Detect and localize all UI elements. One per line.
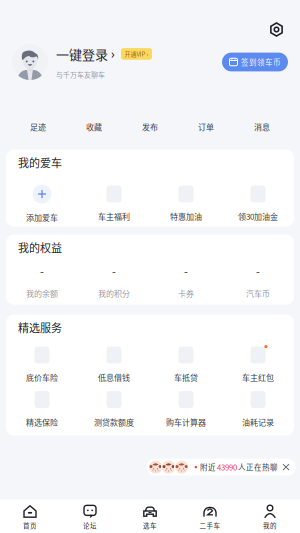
staticText: 消息	[254, 121, 270, 133]
staticText: 车主红包	[242, 371, 274, 383]
button[interactable]: 论坛	[60, 505, 120, 530]
staticText: -	[256, 263, 260, 279]
staticText: 二手车	[199, 521, 220, 530]
staticText: 论坛	[83, 521, 97, 530]
button[interactable]: 我的	[240, 505, 300, 530]
staticText: 测贷款额度	[94, 416, 134, 428]
button[interactable]: 车抵贷	[150, 346, 222, 383]
staticText: -	[184, 263, 188, 279]
staticText: 添加爱车	[26, 211, 58, 223]
button[interactable]: 二手车	[180, 505, 240, 530]
staticText: -	[112, 263, 116, 279]
button[interactable]: 特惠加油	[150, 185, 222, 222]
staticText: 车主福利	[98, 210, 130, 222]
staticText: 首页	[23, 521, 37, 530]
staticText: 油耗记录	[242, 416, 274, 428]
button[interactable]: 油耗记录	[222, 391, 294, 428]
staticText: -	[40, 263, 44, 279]
staticText: 发布	[142, 121, 158, 133]
staticText: 选车	[143, 521, 157, 530]
button[interactable]: 车主福利	[78, 185, 150, 222]
button[interactable]: 测贷款额度	[78, 391, 150, 428]
staticText: ›	[111, 46, 115, 62]
staticText: 我的积分	[98, 287, 130, 299]
button[interactable]: 设置	[263, 16, 290, 43]
staticText: 我的余额	[26, 287, 58, 299]
staticText: 汽车币	[246, 287, 270, 299]
button[interactable]: -	[222, 265, 294, 299]
button[interactable]: 附近	[147, 459, 296, 476]
button[interactable]: -	[78, 265, 150, 299]
button[interactable]: 签到领车币	[222, 53, 288, 71]
staticText: 订单	[198, 121, 214, 133]
staticText: 开通VIP ›	[124, 50, 148, 58]
button[interactable]: -	[6, 265, 78, 299]
staticText: 附近	[200, 462, 216, 473]
staticText: 特惠加油	[170, 210, 202, 222]
staticText: 我的爱车	[18, 155, 62, 170]
staticText: 43990	[217, 461, 237, 473]
staticText: 购车计算器	[166, 416, 206, 428]
staticText: 底价车险	[26, 371, 58, 383]
button[interactable]: 收藏	[66, 121, 122, 133]
button[interactable]: 底价车险	[6, 346, 78, 383]
staticText: 卡券	[178, 287, 194, 299]
button[interactable]: 领30加油金	[222, 185, 294, 222]
staticText: 车抵贷	[174, 371, 198, 383]
button[interactable]: 购车计算器	[150, 391, 222, 428]
staticText: 与千万车友聊车	[56, 69, 105, 79]
button[interactable]: 消息	[234, 121, 290, 133]
button[interactable]: 开通VIP ›	[121, 48, 152, 60]
button[interactable]: 发布	[122, 121, 178, 133]
button[interactable]: 低息借钱	[78, 346, 150, 383]
staticText: 领30加油金	[238, 210, 278, 222]
staticText: 低息借钱	[98, 371, 130, 383]
staticText: 我的	[263, 521, 277, 530]
button[interactable]: 车主红包	[222, 346, 294, 383]
staticText: 一键登录	[56, 44, 108, 63]
staticText: 人正在热聊	[238, 462, 278, 473]
staticText: 签到领车币	[241, 57, 281, 67]
staticText: 我的权益	[18, 240, 62, 255]
button[interactable]: 首页	[0, 505, 60, 530]
button[interactable]: -	[150, 265, 222, 299]
staticText: 精选服务	[18, 320, 62, 335]
button[interactable]: 选车	[120, 505, 180, 530]
button[interactable]: 订单	[178, 121, 234, 133]
staticText: 足迹	[30, 121, 46, 133]
staticText: 精选保险	[26, 416, 58, 428]
button[interactable]: 足迹	[10, 121, 66, 133]
button[interactable]: 精选保险	[6, 391, 78, 428]
button[interactable]: 添加爱车	[6, 184, 78, 223]
staticText: 收藏	[86, 121, 102, 133]
button[interactable]: 一键登录	[56, 44, 115, 63]
